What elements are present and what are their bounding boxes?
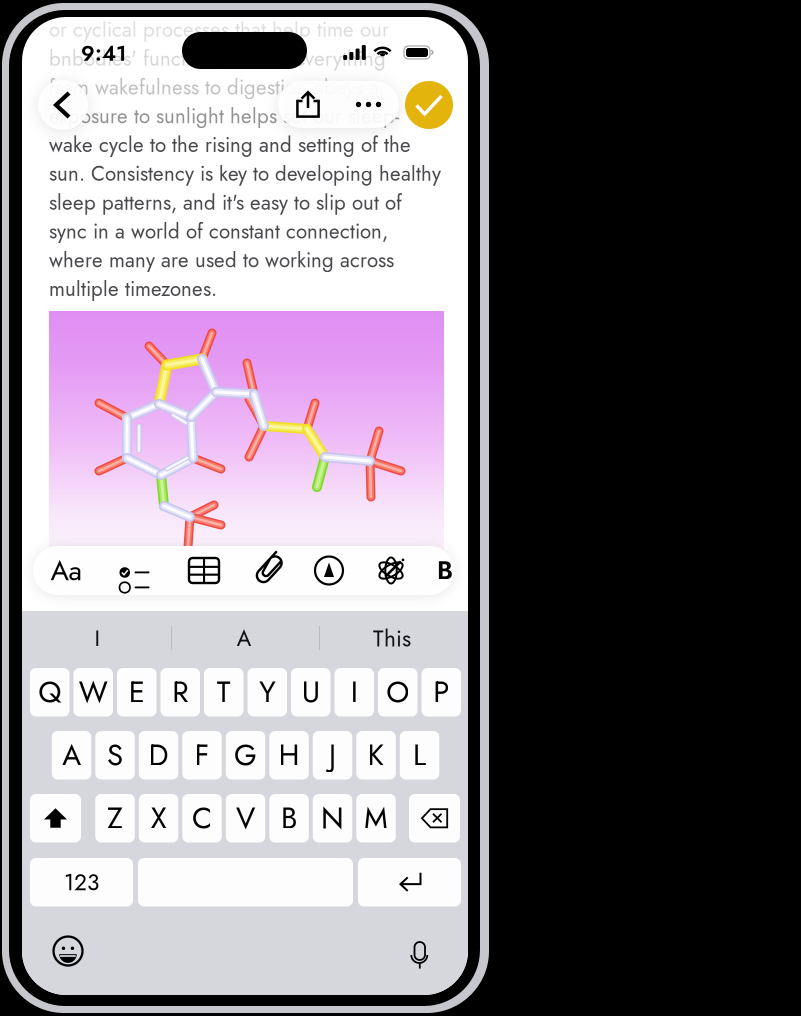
button[interactable]: K — [356, 731, 396, 779]
staticText: sun. Consistency is key to developing he… — [49, 159, 441, 188]
button[interactable]: Delete — [409, 794, 460, 842]
staticText: M — [364, 797, 388, 839]
button[interactable]: N — [313, 794, 352, 842]
button[interactable]: Share — [278, 81, 338, 128]
staticText: P — [433, 671, 449, 713]
button[interactable]: Y — [247, 668, 287, 716]
button[interactable]: C — [182, 794, 222, 842]
button[interactable]: I — [24, 615, 171, 662]
button[interactable]: S — [95, 731, 135, 779]
staticText: S — [107, 734, 123, 776]
staticText: D — [149, 734, 169, 776]
staticText: bnbodies' functions, so that everything — [49, 44, 386, 73]
staticText: sync in a world of constant connection, — [49, 217, 388, 246]
staticText: Q — [38, 671, 61, 713]
button[interactable]: B — [269, 794, 309, 842]
staticText: I — [94, 622, 100, 655]
staticText: T — [217, 671, 231, 713]
button[interactable]: J — [313, 731, 352, 779]
staticText: X — [151, 797, 167, 839]
staticText: where many are used to working across — [49, 245, 394, 275]
button[interactable]: Bold — [430, 546, 460, 595]
button[interactable]: I — [334, 668, 374, 716]
staticText: multiple timezones. — [49, 274, 217, 304]
button[interactable]: Return — [358, 858, 461, 906]
staticText: Z — [107, 797, 123, 839]
button[interactable]: R — [160, 668, 200, 716]
staticText: 9:41 — [81, 38, 126, 69]
button[interactable]: This — [318, 615, 466, 662]
button[interactable]: Emoji — [46, 929, 90, 973]
button[interactable]: Shift — [30, 794, 81, 842]
button[interactable]: More — [338, 81, 399, 128]
button[interactable]: Table — [173, 546, 235, 595]
staticText: I — [351, 671, 358, 713]
staticText: U — [302, 671, 320, 713]
button[interactable]: Markup — [298, 546, 360, 595]
staticText: G — [234, 734, 257, 776]
button[interactable]: O — [378, 668, 417, 716]
button[interactable]: Format — [35, 546, 97, 595]
button[interactable]: Checklist — [96, 546, 158, 595]
staticText: B — [437, 552, 453, 589]
staticText: H — [279, 734, 300, 776]
staticText: Y — [259, 671, 275, 713]
button[interactable]: Attachment — [239, 546, 301, 595]
button[interactable]: A — [52, 731, 91, 779]
staticText: R — [172, 671, 188, 713]
button[interactable]: F — [182, 731, 222, 779]
button[interactable]: V — [226, 794, 265, 842]
button[interactable]: A — [171, 615, 317, 662]
button[interactable]: D — [139, 731, 178, 779]
button[interactable]: M — [356, 794, 396, 842]
staticText: 123 — [64, 866, 99, 899]
staticText: C — [192, 797, 212, 839]
staticText: F — [195, 734, 210, 776]
button[interactable]: W — [73, 668, 113, 716]
staticText: from wakefulness to digestion obeys a — [49, 73, 379, 102]
staticText: N — [321, 797, 344, 839]
staticText: J — [329, 734, 336, 776]
button[interactable]: E — [117, 668, 156, 716]
button[interactable]: U — [291, 668, 330, 716]
button[interactable]: Apple Intelligence — [360, 546, 422, 595]
button[interactable]: T — [204, 668, 243, 716]
staticText: exposure to sunlight helps set our sleep… — [49, 101, 399, 131]
staticText: A — [62, 734, 81, 776]
staticText: wake cycle to the rising and setting of … — [49, 130, 411, 160]
staticText: Aa — [50, 550, 81, 591]
button[interactable]: Back — [38, 80, 88, 130]
button[interactable]: Done — [405, 81, 453, 129]
staticText: This — [373, 622, 411, 655]
button[interactable]: Dictation — [401, 929, 445, 973]
staticText: A — [236, 622, 251, 655]
staticText: L — [413, 734, 426, 776]
staticText: V — [236, 797, 255, 839]
button[interactable]: G — [226, 731, 265, 779]
staticText: B — [281, 797, 297, 839]
staticText: O — [386, 671, 409, 713]
staticText: K — [368, 734, 385, 776]
button[interactable]: P — [421, 668, 461, 716]
staticText: sleep patterns, and it's easy to slip ou… — [49, 188, 402, 217]
button[interactable]: Q — [30, 668, 69, 716]
button[interactable]: L — [400, 731, 439, 779]
staticText: W — [79, 671, 108, 713]
button[interactable]: X — [139, 794, 178, 842]
staticText: E — [129, 671, 145, 713]
staticText: or cyclical processes that help time our — [49, 15, 389, 44]
button[interactable]: Z — [95, 794, 135, 842]
button[interactable]: H — [269, 731, 309, 779]
button[interactable]: Numbers — [30, 858, 133, 906]
